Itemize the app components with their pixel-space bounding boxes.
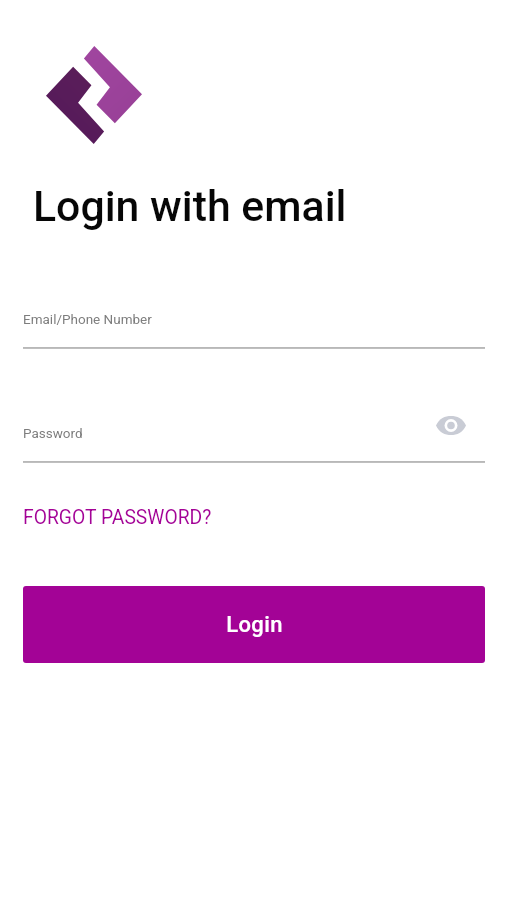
staticText: Password [23,425,83,441]
button[interactable]: Show password [429,404,473,447]
button[interactable]: Login [23,586,485,663]
staticText: Email/Phone Number [23,311,152,327]
button[interactable]: FORGOT PASSWORD? [23,506,212,529]
button[interactable]: Email/Phone Number [23,300,485,349]
button[interactable]: Password [23,414,485,463]
staticText: Login [226,612,283,638]
staticText: Login with email [33,181,347,231]
